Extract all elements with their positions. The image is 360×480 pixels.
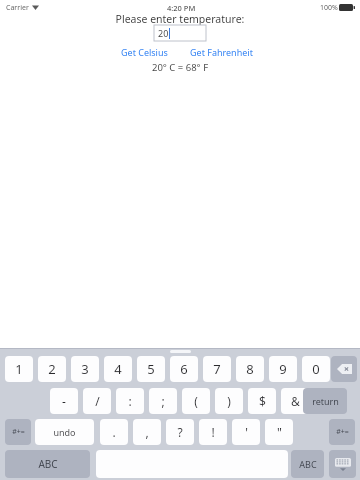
staticText: ' [245,424,248,440]
button[interactable]: ( [182,388,210,414]
button[interactable]: 5 [137,356,165,382]
staticText: 7 [213,360,221,378]
button[interactable]: ! [199,419,227,445]
button[interactable]: , [133,419,161,445]
button[interactable]: Hide keyboard [329,450,356,478]
button[interactable]: @ [314,388,342,414]
button[interactable]: ; [149,388,177,414]
button[interactable]: Get Celsius [113,45,175,59]
button[interactable]: 3 [71,356,99,382]
button[interactable]: ' [232,419,260,445]
staticText: ) [227,393,231,409]
staticText: 20 [158,27,169,39]
staticText: ABC [38,457,58,471]
staticText: @ [323,393,334,409]
button[interactable]: 2 [38,356,66,382]
staticText: & [291,393,300,409]
button[interactable]: undo [35,419,94,445]
staticText: " [277,424,282,440]
staticText: 3 [81,360,89,378]
button[interactable]: 20 [154,25,206,41]
button[interactable]: - [50,388,78,414]
button[interactable]: 1 [5,356,33,382]
button[interactable]: 4 [104,356,132,382]
staticText: #+= [336,427,349,437]
staticText: ? [177,424,183,440]
staticText: 5 [147,360,155,378]
button[interactable]: 0 [302,356,330,382]
staticText: 100% [320,3,338,13]
staticText: 4 [114,360,122,378]
staticText: Get Celsius [121,46,168,58]
staticText: Get Fahrenheit [190,46,253,58]
button[interactable] [170,350,191,353]
button[interactable]: $ [248,388,276,414]
staticText: #+= [12,427,25,437]
staticText: - [62,393,66,409]
staticText: 1 [15,360,23,378]
staticText: return [312,395,339,407]
button[interactable]: ABC [291,450,324,478]
button[interactable]: 7 [203,356,231,382]
button[interactable]: Get Fahrenheit [185,45,257,59]
staticText: 9 [279,360,287,378]
staticText: . [112,424,116,440]
staticText: 4:20 PM [167,3,196,13]
button[interactable]: #+= [5,419,31,445]
button[interactable]: : [116,388,144,414]
button[interactable]: 8 [236,356,264,382]
staticText: $ [259,393,266,409]
staticText: , [145,424,149,440]
button[interactable]: #+= [329,419,355,445]
staticText: ! [211,424,215,440]
button[interactable]: . [100,419,128,445]
button[interactable]: ABC [5,450,90,478]
button[interactable]: / [83,388,111,414]
staticText: 6 [180,360,188,378]
staticText: ABC [299,458,317,470]
button[interactable]: return [303,388,347,414]
staticText: undo [53,426,76,438]
staticText: / [95,393,100,409]
staticText: 2 [48,360,56,378]
button[interactable]: Backspace [331,356,357,382]
button[interactable]: ? [166,419,194,445]
staticText: ; [161,393,165,409]
button[interactable]: 9 [269,356,297,382]
staticText: 8 [246,360,254,378]
staticText: ( [194,393,198,409]
staticText: 0 [312,360,320,378]
button[interactable]: ) [215,388,243,414]
staticText: 20° C = 68° F [0,61,360,74]
button[interactable]: & [281,388,309,414]
button[interactable]: 6 [170,356,198,382]
staticText: Carrier [6,3,29,13]
button[interactable]: " [265,419,293,445]
staticText: Please enter temperature: [0,12,360,26]
staticText: : [128,393,132,409]
